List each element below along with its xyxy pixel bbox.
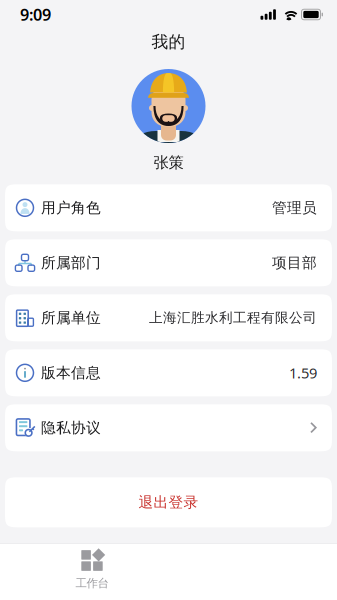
staticText: 上海汇胜水利工程有限公司 xyxy=(149,309,317,326)
button[interactable]: 工作台 xyxy=(36,543,148,600)
button[interactable]: 所属单位 xyxy=(5,294,332,341)
staticText: 1.59 xyxy=(289,363,317,383)
button[interactable]: 版本信息 xyxy=(5,349,332,396)
staticText: 隐私协议 xyxy=(41,419,101,437)
button[interactable]: 所属部门 xyxy=(5,239,332,286)
staticText: 我的 xyxy=(151,31,185,52)
staticText: 工作台 xyxy=(75,576,108,590)
staticText: 退出登录 xyxy=(138,493,198,512)
staticText: 张策 xyxy=(153,153,183,172)
staticText: 管理员 xyxy=(272,199,317,217)
staticText: 9:09 xyxy=(20,3,51,26)
button[interactable]: 退出登录 xyxy=(5,477,332,527)
staticText: 用户角色 xyxy=(41,199,101,217)
button[interactable]: 用户角色 xyxy=(5,184,332,231)
staticText: 版本信息 xyxy=(41,364,101,382)
staticText: 项目部 xyxy=(272,254,317,272)
staticText: 所属单位 xyxy=(41,309,101,327)
button[interactable]: 隐私协议 xyxy=(5,404,332,451)
staticText: 所属部门 xyxy=(41,254,101,272)
